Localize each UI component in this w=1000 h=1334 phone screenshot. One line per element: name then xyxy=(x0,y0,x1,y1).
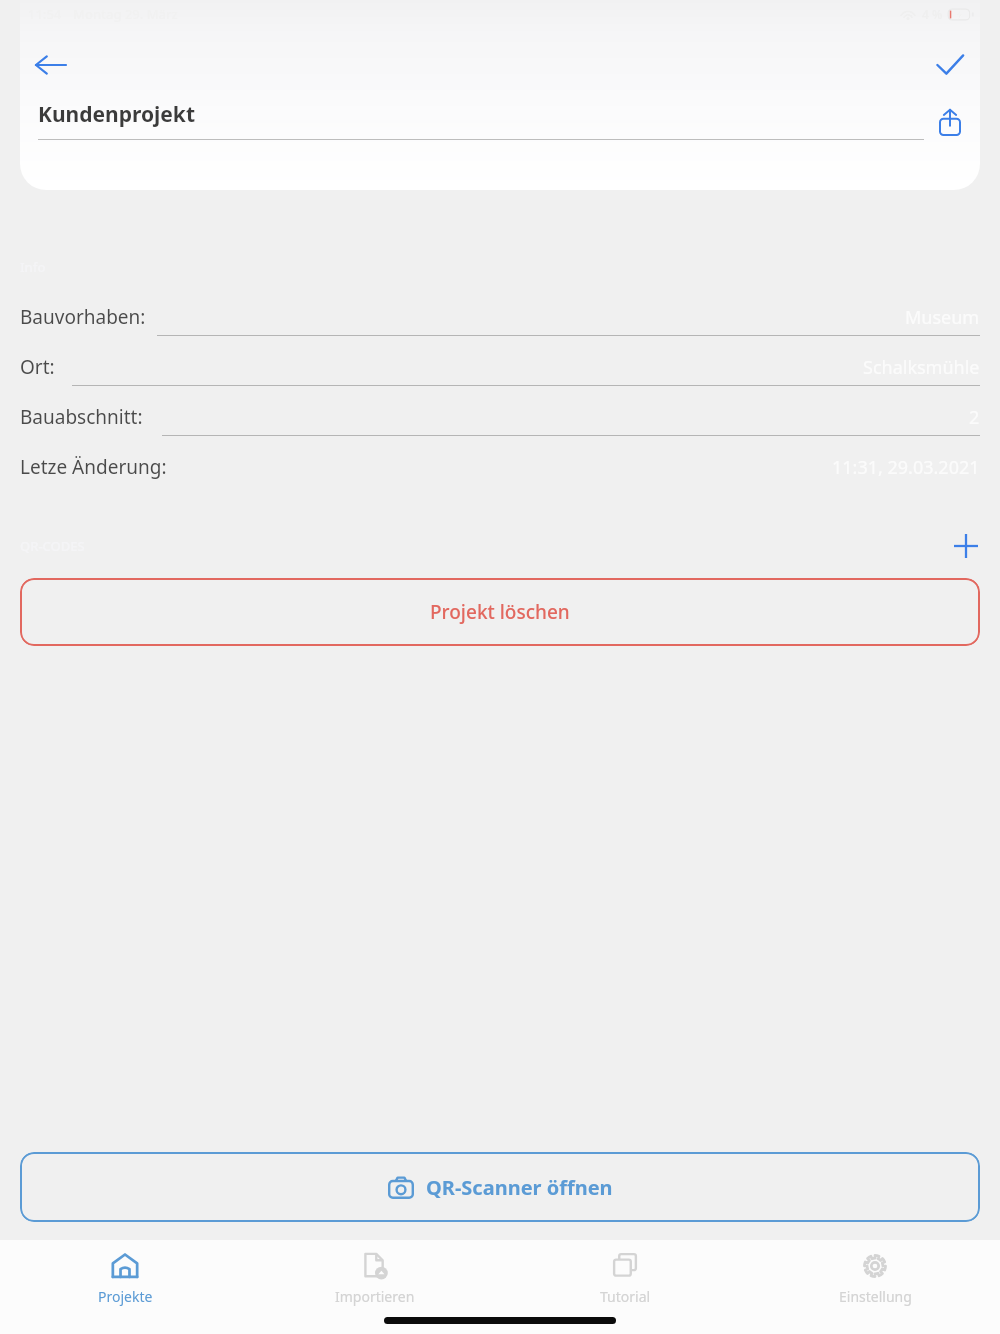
button[interactable]: Bauvorhaben: xyxy=(0,292,1000,342)
staticText: Kundenprojekt xyxy=(38,100,195,129)
staticText: Letze Änderung: xyxy=(20,454,167,480)
staticText: QR-Scanner öffnen xyxy=(426,1174,613,1201)
staticText: Importieren xyxy=(335,1287,415,1306)
button[interactable]: Einstellung xyxy=(750,1250,1000,1316)
button[interactable]: Bauabschnitt: xyxy=(0,392,1000,442)
button[interactable]: Speichern xyxy=(918,34,980,96)
staticText: Schalksmühle xyxy=(863,355,980,380)
staticText: 2 xyxy=(969,405,980,430)
staticText: Ort: xyxy=(20,354,55,380)
staticText: Projekt löschen xyxy=(430,599,570,625)
button[interactable]: QR-Code hinzufügen xyxy=(938,524,994,568)
button[interactable]: Teilen xyxy=(922,96,978,148)
button[interactable]: Zurück xyxy=(20,34,82,96)
button[interactable]: Projekte xyxy=(0,1250,250,1316)
staticText: Bauabschnitt: xyxy=(20,404,143,430)
button[interactable]: Tutorial xyxy=(500,1250,750,1316)
button[interactable]: Letze Änderung: xyxy=(0,442,1000,492)
button[interactable]: Importieren xyxy=(250,1250,500,1316)
button[interactable]: Projekt löschen xyxy=(20,578,980,646)
button[interactable]: Kundenprojekt xyxy=(20,96,980,152)
button[interactable]: QR-Scanner öffnen xyxy=(20,1152,980,1222)
staticText: Projekte xyxy=(98,1287,153,1306)
staticText: Tutorial xyxy=(600,1287,651,1306)
staticText: 11:31, 29.03.2021 xyxy=(832,455,980,480)
staticText: Bauvorhaben: xyxy=(20,304,146,330)
staticText: Einstellung xyxy=(839,1287,912,1306)
staticText: Museum xyxy=(905,305,980,330)
button[interactable]: Ort: xyxy=(0,342,1000,392)
